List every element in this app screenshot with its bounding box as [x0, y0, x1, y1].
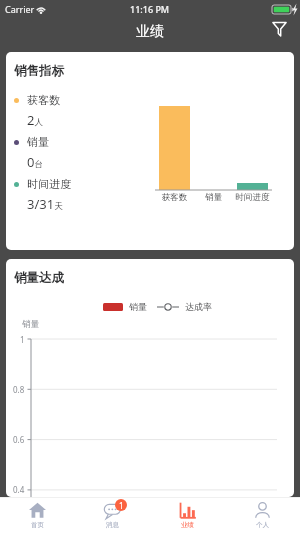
button[interactable]: 首页: [0, 498, 75, 533]
button[interactable]: 1: [75, 498, 150, 533]
button[interactable]: Filter: [267, 17, 291, 41]
staticText: 1: [119, 500, 124, 511]
button[interactable]: 个人: [225, 498, 300, 533]
staticText: 消息: [106, 521, 119, 529]
staticText: 获客数: [27, 93, 60, 107]
staticText: 销量: [27, 135, 49, 149]
staticText: 0.8: [13, 384, 25, 395]
staticText: 业绩: [136, 23, 164, 41]
staticText: 0.4: [13, 484, 25, 495]
staticText: Carrier: [5, 3, 35, 15]
staticText: 销量: [22, 319, 39, 330]
button[interactable]: 业绩: [150, 498, 225, 533]
staticText: 个人: [256, 521, 269, 529]
staticText: 2人: [27, 111, 43, 129]
staticText: 销量达成: [14, 270, 64, 286]
staticText: 销量: [129, 301, 147, 312]
staticText: 11:16 PM: [130, 3, 170, 15]
staticText: 0.6: [13, 434, 25, 445]
staticText: 时间进度: [233, 192, 272, 203]
staticText: 销量: [194, 192, 233, 203]
staticText: 0台: [27, 153, 43, 171]
staticText: 达成率: [185, 301, 212, 312]
staticText: 销售指标: [14, 63, 64, 79]
staticText: 1: [20, 334, 25, 345]
staticText: 首页: [31, 521, 44, 529]
staticText: 3/31天: [27, 195, 63, 213]
staticText: 获客数: [155, 192, 194, 203]
staticText: 时间进度: [27, 177, 71, 191]
staticText: 业绩: [181, 521, 194, 529]
